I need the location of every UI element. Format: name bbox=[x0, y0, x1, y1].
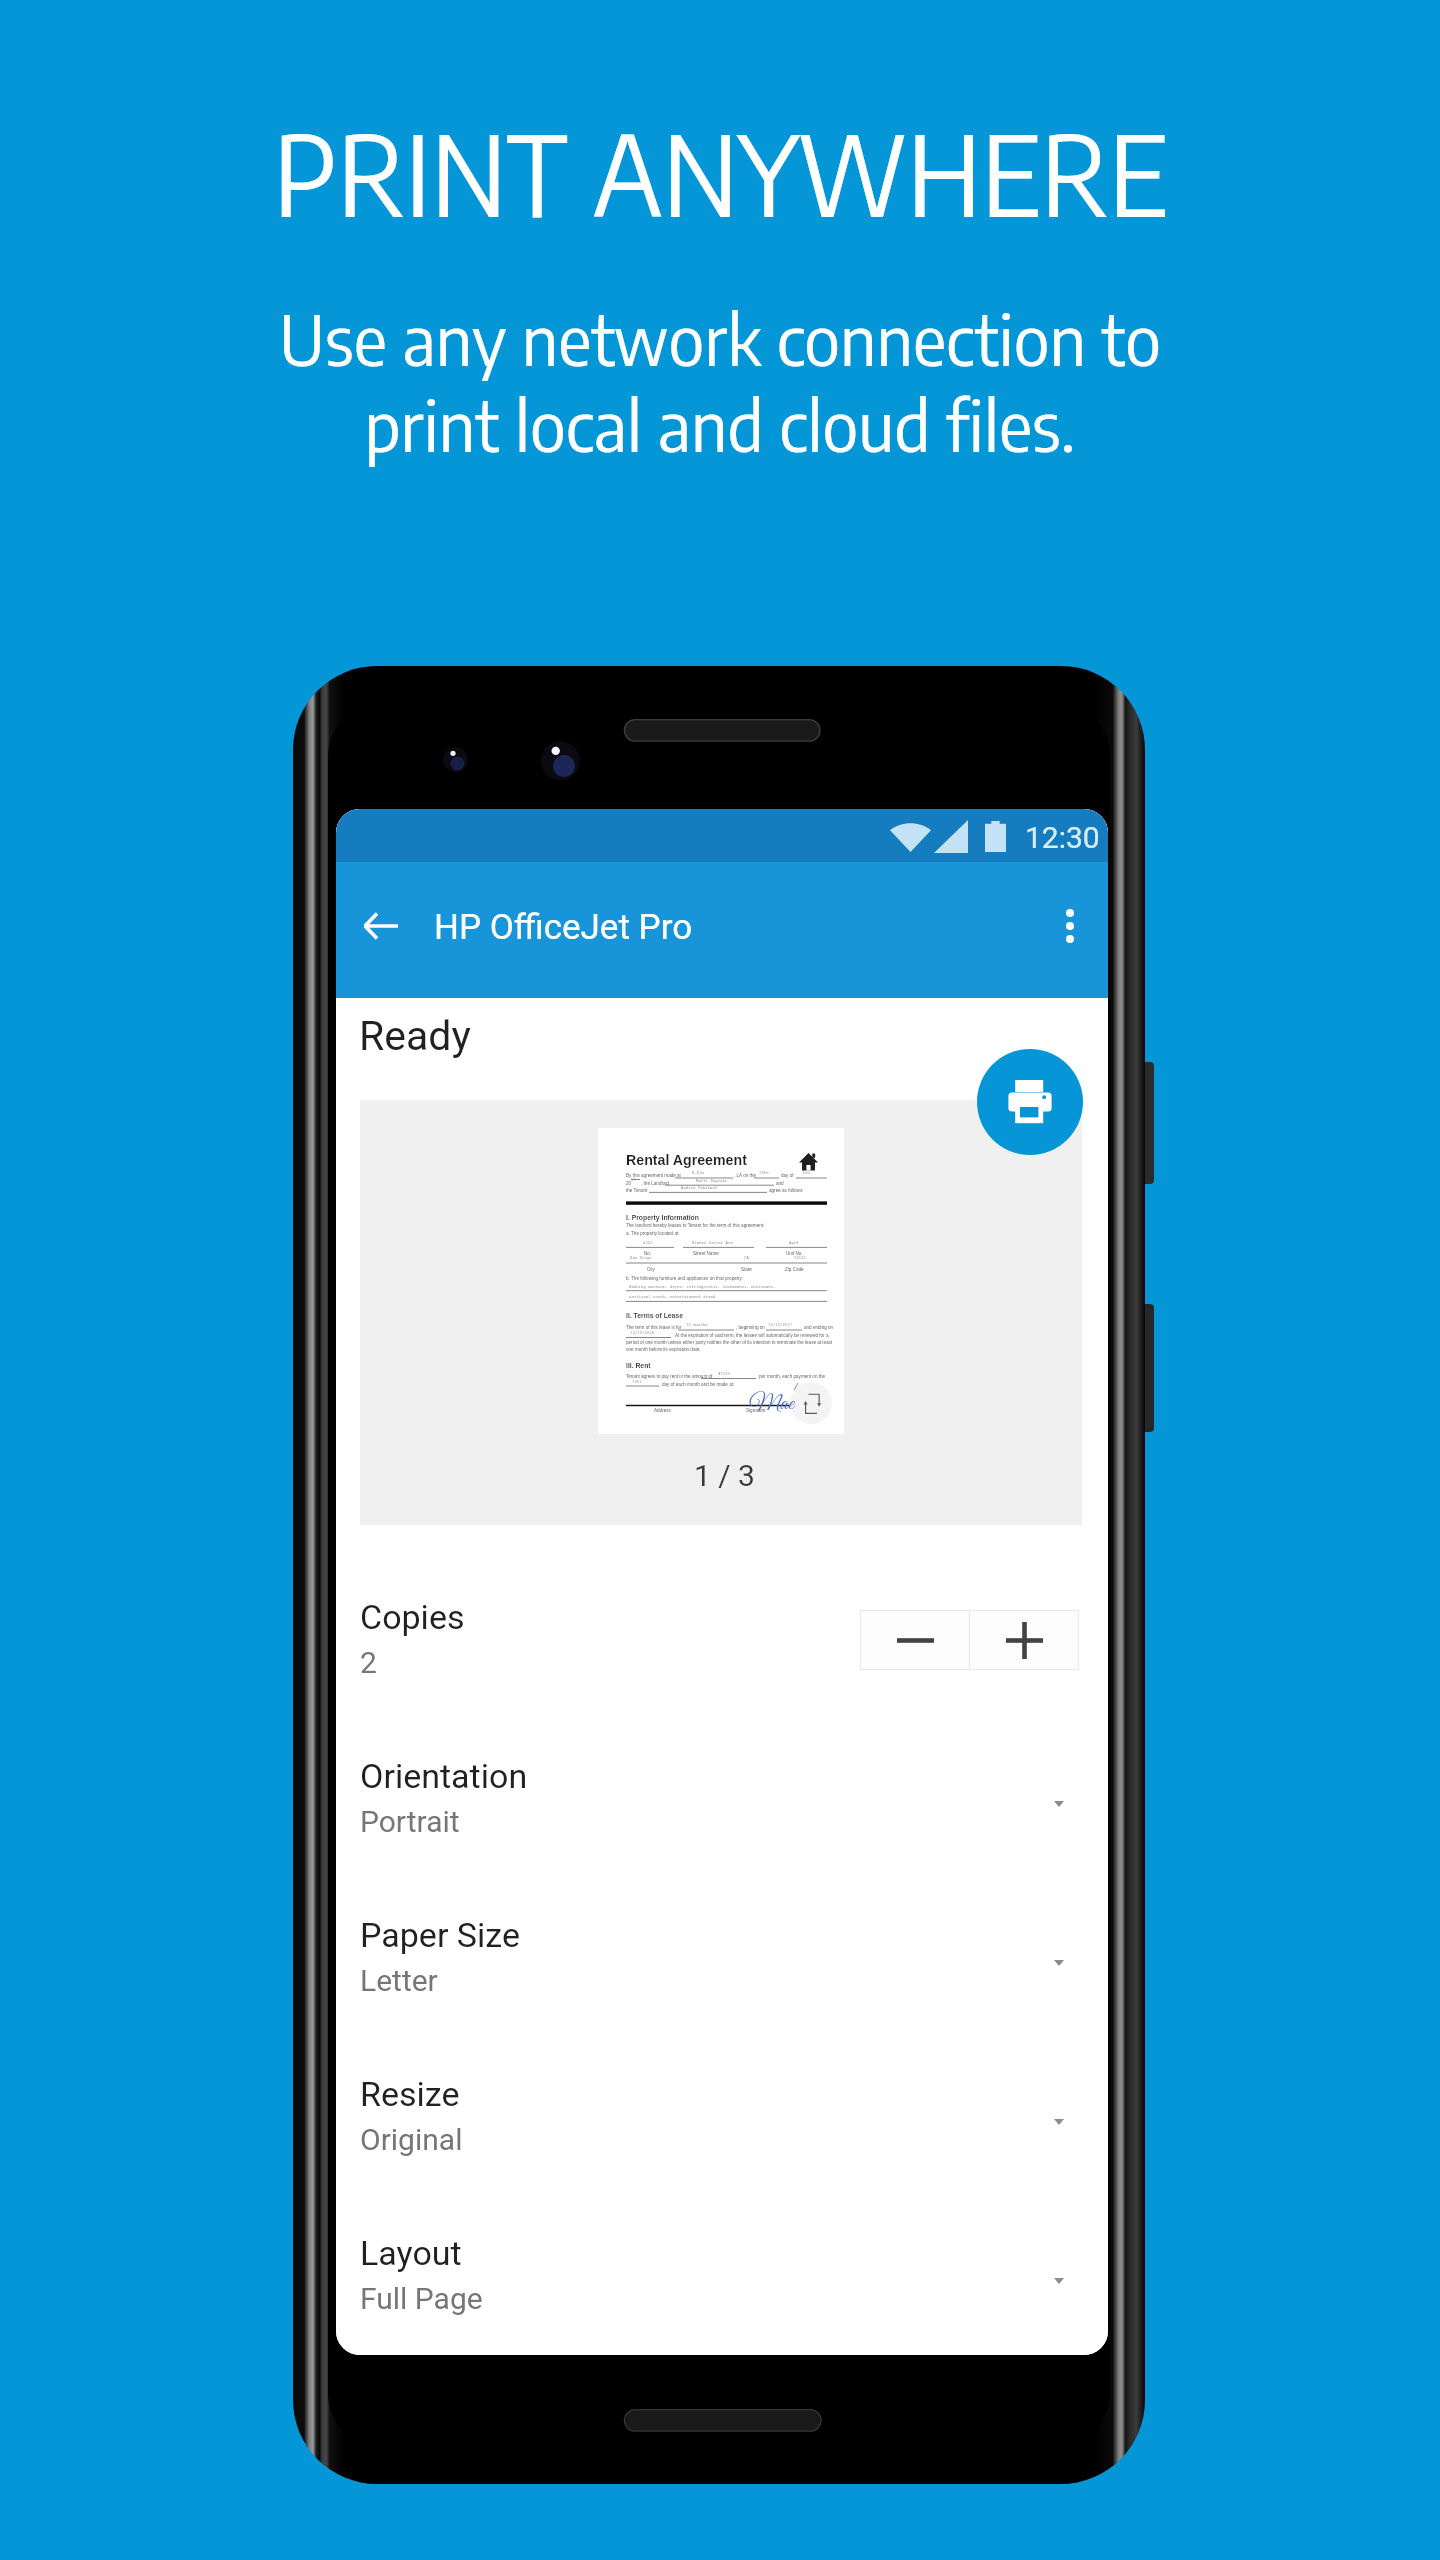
staticText: 17 bbox=[631, 1178, 636, 1182]
staticText: State bbox=[741, 1267, 752, 1272]
staticText: sectional couch, entertainment stand bbox=[629, 1295, 716, 1299]
button[interactable]: Print bbox=[977, 1049, 1083, 1155]
staticText: Rental Agreement bbox=[626, 1152, 747, 1168]
staticText: City bbox=[647, 1267, 655, 1272]
staticText: Letter bbox=[360, 1963, 438, 1998]
staticText: HP OfficeJet Pro bbox=[434, 907, 693, 948]
staticText: and bbox=[776, 1181, 784, 1186]
staticText: San Diego bbox=[630, 1256, 652, 1260]
button[interactable]: Back bbox=[344, 890, 416, 962]
staticText: agree as follows: bbox=[769, 1188, 804, 1193]
staticText: By this agreement made at bbox=[626, 1173, 681, 1178]
staticText: b. The following furniture and appliance… bbox=[626, 1276, 744, 1281]
staticText: 1901 bbox=[632, 1380, 642, 1384]
staticText: 4321 bbox=[643, 1241, 653, 1245]
staticText: I. Property Information bbox=[626, 1214, 699, 1222]
button[interactable]: Copies bbox=[336, 1597, 1108, 1756]
staticText: Orientation bbox=[360, 1756, 528, 1796]
staticText: 19th bbox=[759, 1171, 769, 1175]
staticText: $1500 bbox=[718, 1372, 730, 1376]
staticText: Portrait bbox=[360, 1804, 460, 1839]
staticText: Zip Code bbox=[785, 1267, 804, 1272]
staticText: Tenant agrees to pay rent in the amount … bbox=[626, 1374, 713, 1379]
button[interactable]: Orientation bbox=[336, 1756, 1108, 1915]
staticText: 12/19/2017 bbox=[768, 1323, 792, 1327]
staticText: 2 bbox=[360, 1645, 377, 1680]
staticText: Marti Sapzuki bbox=[696, 1179, 728, 1183]
staticText: CA bbox=[744, 1256, 749, 1260]
staticText: PRINT ANYWHERE bbox=[273, 104, 1168, 241]
staticText: Bisbee Carter Ave bbox=[692, 1241, 733, 1245]
button[interactable]: Increase copies bbox=[970, 1611, 1078, 1669]
staticText: Original bbox=[360, 2122, 463, 2157]
staticText: Washing machine, dryer, refridgerator, d… bbox=[629, 1285, 776, 1289]
staticText: 12/19/2018 bbox=[630, 1331, 654, 1335]
staticText: per month, each payment on the bbox=[759, 1374, 826, 1379]
staticText: No. bbox=[644, 1251, 652, 1256]
button[interactable]: Paper Size bbox=[336, 1915, 1108, 2074]
staticText: , beginning on bbox=[736, 1325, 765, 1330]
staticText: Mae bbox=[749, 1389, 794, 1418]
staticText: , the Landlord bbox=[641, 1181, 670, 1186]
button[interactable]: More options bbox=[1034, 890, 1106, 962]
button[interactable]: Resize bbox=[336, 2074, 1108, 2233]
button[interactable]: Layout bbox=[336, 2233, 1108, 2355]
button[interactable]: Decrease copies bbox=[861, 1611, 969, 1669]
staticText: N.Elm bbox=[692, 1171, 704, 1175]
staticText: , LA on the bbox=[734, 1173, 756, 1178]
staticText: 20 bbox=[626, 1181, 632, 1186]
staticText: one month before its expiration date. bbox=[626, 1347, 701, 1352]
staticText: 1 / 3 bbox=[694, 1458, 755, 1493]
staticText: Resize bbox=[360, 2074, 460, 2114]
staticText: the Tenant bbox=[626, 1188, 648, 1193]
staticText: III. Rent bbox=[626, 1362, 651, 1370]
staticText: Apt8 bbox=[789, 1241, 799, 1245]
staticText: Signature bbox=[746, 1408, 766, 1413]
staticText: Ready bbox=[359, 1012, 471, 1060]
staticText: The term of this lease is for bbox=[626, 1325, 682, 1330]
staticText: a. The property located at: bbox=[626, 1231, 680, 1236]
staticText: 12:30 bbox=[1025, 820, 1100, 855]
staticText: day of each month and be made at: bbox=[662, 1382, 735, 1387]
staticText: Use any network connection to print loca… bbox=[279, 295, 1161, 467]
staticText: II. Terms of Lease bbox=[626, 1312, 683, 1320]
staticText: period of one month unless either party … bbox=[626, 1340, 833, 1345]
staticText: Address bbox=[654, 1408, 671, 1413]
staticText: Street Name bbox=[693, 1251, 719, 1256]
staticText: Layout bbox=[360, 2233, 462, 2273]
staticText: day of bbox=[781, 1173, 794, 1178]
staticText: 92123 bbox=[794, 1256, 806, 1260]
staticText: Andrik Fakubach bbox=[681, 1186, 717, 1190]
staticText: At the expiration of said term, the less… bbox=[675, 1333, 829, 1338]
staticText: and ending on bbox=[804, 1325, 834, 1330]
staticText: The landlord hereby leases to Tenant for… bbox=[626, 1223, 765, 1228]
staticText: Unit No. bbox=[786, 1251, 803, 1256]
staticText: Copies bbox=[360, 1597, 465, 1637]
staticText: Dec. bbox=[803, 1171, 813, 1175]
staticText: Full Page bbox=[360, 2281, 483, 2316]
staticText: 12 months bbox=[686, 1323, 708, 1327]
staticText: Paper Size bbox=[360, 1915, 520, 1955]
